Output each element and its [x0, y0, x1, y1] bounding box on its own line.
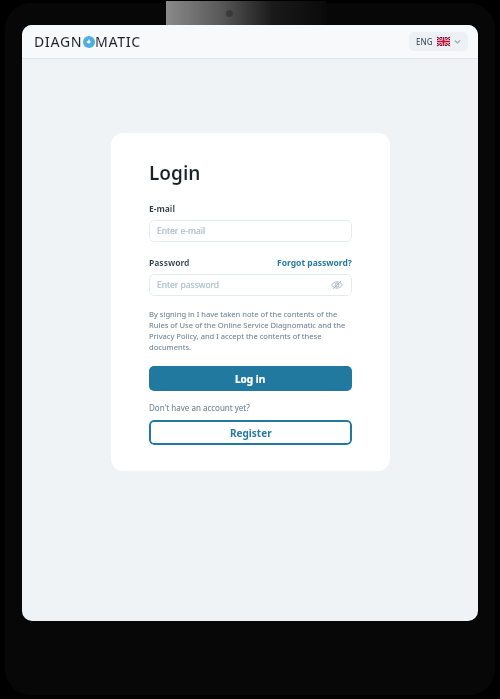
- button[interactable]: Change language: [409, 32, 468, 51]
- staticText: Register: [230, 426, 272, 440]
- staticText: E-mail: [149, 203, 175, 215]
- staticText: ENG: [416, 36, 433, 47]
- staticText: Forgot password?: [277, 257, 352, 269]
- staticText: Enter password: [157, 279, 220, 291]
- staticText: By signing in I have taken note of the c…: [149, 309, 352, 352]
- staticText: Password: [149, 257, 190, 269]
- staticText: Enter e-mail: [157, 225, 206, 237]
- staticText: Log in: [235, 372, 266, 386]
- button[interactable]: Forgot password?: [277, 257, 352, 269]
- staticText: DIAGN: [34, 32, 83, 51]
- button[interactable]: Enter e-mail: [149, 220, 352, 242]
- button[interactable]: Register: [149, 420, 352, 445]
- staticText: MATIC: [95, 32, 141, 51]
- button[interactable]: Enter password: [149, 274, 352, 296]
- staticText: Don't have an account yet?: [149, 402, 250, 413]
- staticText: Login: [149, 160, 201, 186]
- button[interactable]: Log in: [149, 366, 352, 391]
- button[interactable]: Show password: [330, 278, 344, 292]
